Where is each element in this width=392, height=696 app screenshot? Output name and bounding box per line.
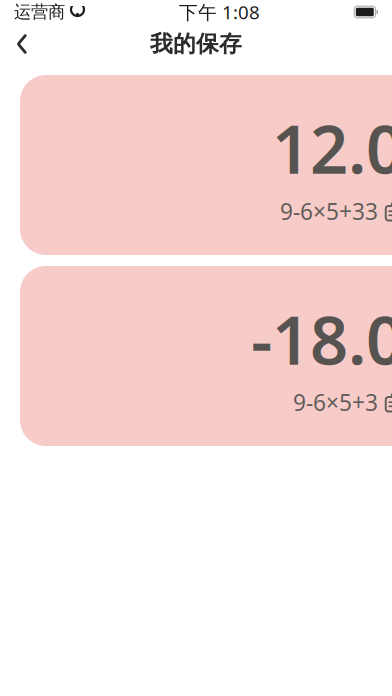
staticText: 9-6×5+33 [280,196,378,226]
staticText: -18.0 [251,295,392,383]
staticText: 下午 1:08 [179,0,260,24]
staticText: 12.0 [272,104,392,192]
staticText: 我的保存 [150,30,242,58]
button[interactable]: 12.0 [0,75,392,255]
button[interactable]: 返回 [0,24,44,64]
staticText: 运营商 [14,1,65,23]
staticText: 9-6×5+3 [293,387,378,417]
button[interactable]: -18.0 [0,266,392,446]
